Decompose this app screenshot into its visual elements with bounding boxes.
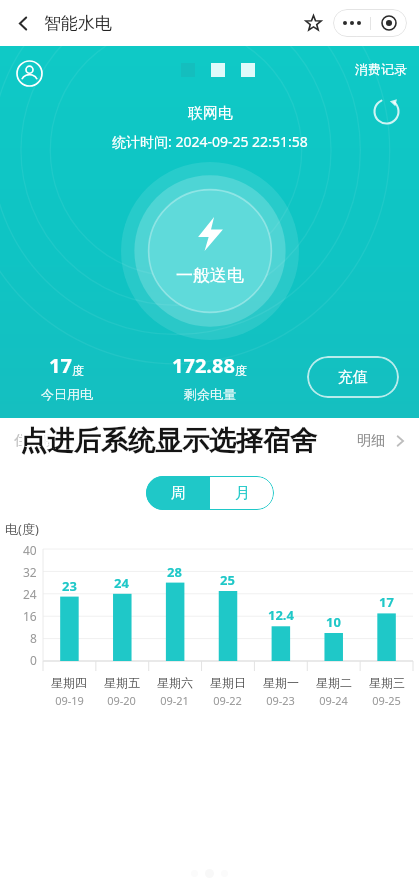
staticText: 一般送电 — [176, 265, 244, 286]
staticText: 10 — [326, 613, 341, 631]
staticText: 点进后系统显示选择宿舍 — [22, 424, 319, 458]
staticText: 09-25 — [372, 693, 401, 708]
button[interactable]: Close — [370, 9, 407, 37]
staticText: 联网电 — [188, 104, 233, 123]
staticText: 16 — [23, 608, 37, 624]
staticText: 电(度) — [5, 520, 39, 538]
staticText: 17 — [379, 593, 394, 611]
staticText: 今日用电 — [41, 386, 93, 402]
staticText: 星期二 — [316, 675, 352, 690]
staticText: 8 — [30, 630, 37, 646]
staticText: 度 — [235, 363, 247, 378]
staticText: 12.4 — [268, 606, 294, 624]
staticText: 点进后系统显示选择宿舍 — [18, 422, 315, 456]
staticText: 17 — [49, 352, 72, 379]
staticText: 星期三 — [369, 675, 405, 690]
staticText: 24 — [23, 586, 37, 602]
button[interactable]: 消费记录 — [347, 57, 415, 81]
staticText: 09-23 — [266, 693, 295, 708]
button[interactable]: Back — [8, 5, 120, 42]
staticText: 充值 — [338, 368, 368, 387]
staticText: 剩余电量 — [184, 386, 236, 402]
staticText: 点进后系统显示选择宿舍 — [18, 424, 315, 458]
staticText: 24 — [114, 574, 129, 592]
staticText: 0 — [30, 652, 37, 668]
staticText: 星期四 — [51, 675, 87, 690]
staticText: 32 — [23, 564, 37, 580]
staticText: 周 — [171, 484, 186, 503]
button[interactable]: 住宿楼栋 — [0, 418, 419, 464]
staticText: 点进后系统显示选择宿舍 — [20, 426, 317, 460]
staticText: 09-19 — [55, 693, 84, 708]
staticText: 度 — [72, 363, 84, 378]
staticText: 住宿楼栋 — [14, 432, 70, 450]
staticText: 统计时间: 2024-09-25 22:51:58 — [112, 132, 308, 151]
staticText: 点进后系统显示选择宿舍 — [20, 422, 317, 456]
other: Back — [16, 16, 31, 31]
button[interactable]: 17 — [0, 352, 133, 402]
button[interactable]: Power status — [121, 162, 299, 340]
button[interactable]: Refresh — [367, 92, 405, 130]
staticText: 月 — [235, 484, 250, 503]
staticText: 25 — [220, 571, 235, 589]
button[interactable]: 充值 — [307, 356, 399, 398]
staticText: 星期六 — [157, 675, 193, 690]
button[interactable]: 周 — [146, 476, 210, 510]
staticText: 09-21 — [160, 693, 189, 708]
button[interactable]: 月 — [210, 476, 274, 510]
staticText: 40 — [23, 542, 37, 558]
staticText: 点进后系统显示选择宿舍 — [22, 426, 319, 460]
button[interactable]: Account — [8, 52, 50, 94]
staticText: 星期一 — [263, 675, 299, 690]
staticText: 星期五 — [104, 675, 140, 690]
staticText: 点进后系统显示选择宿舍 — [22, 422, 319, 456]
staticText: 智能水电 — [44, 13, 112, 34]
staticText: 点进后系统显示选择宿舍 — [20, 424, 317, 458]
button[interactable]: More options — [333, 9, 370, 37]
staticText: 星期日 — [210, 675, 246, 690]
staticText: 点进后系统显示选择宿舍 — [18, 426, 315, 460]
button[interactable]: 172.88 — [133, 352, 286, 402]
staticText: 09-20 — [107, 693, 136, 708]
staticText: 172.88 — [172, 352, 235, 379]
staticText: 明细 — [357, 432, 385, 450]
button[interactable]: Favorite — [298, 8, 328, 38]
staticText: 09-24 — [319, 693, 348, 708]
staticText: 23 — [62, 577, 77, 595]
staticText: 28 — [167, 563, 182, 581]
staticText: 09-22 — [213, 693, 242, 708]
